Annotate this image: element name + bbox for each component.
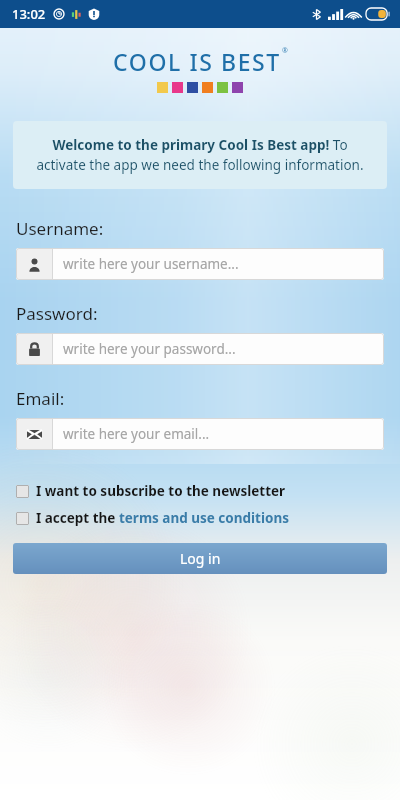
staticText: write here your password... [63,340,236,358]
staticText: Welcome to the primary Cool Is Best app!… [27,136,373,174]
button[interactable]: I accept the terms and use conditions [16,509,384,527]
staticText: 13:02 [12,5,46,23]
staticText: ® [282,46,288,56]
button[interactable]: write here your password... [16,333,384,365]
staticText: I accept the terms and use conditions [36,509,290,527]
button[interactable]: write here your email... [16,418,384,450]
staticText: COOL IS BEST [113,46,281,77]
staticText: Username: [16,217,104,240]
button[interactable]: write here your username... [16,248,384,280]
staticText: I want to subscribe to the newsletter [36,482,286,500]
staticText: Email: [16,387,65,410]
button[interactable]: Log in [13,543,387,574]
staticText: Password: [16,302,98,325]
staticText: write here your email... [63,425,210,443]
button[interactable]: I want to subscribe to the newsletter [16,482,384,500]
staticText: write here your username... [63,255,239,273]
staticText: Log in [180,549,221,568]
